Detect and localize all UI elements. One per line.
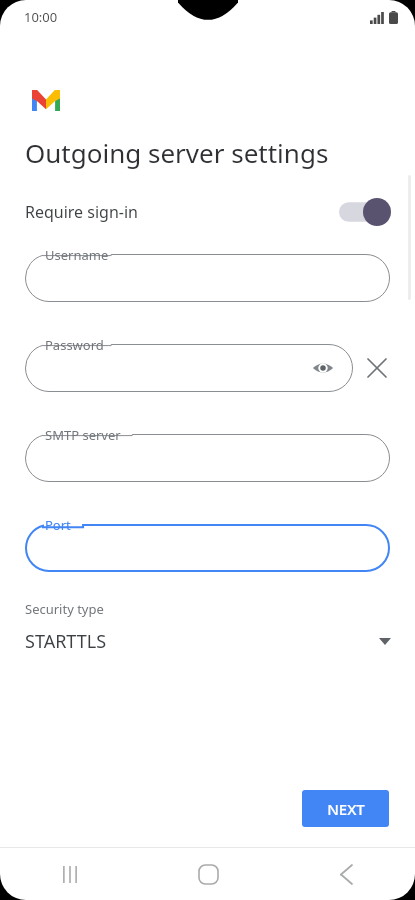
button[interactable]: NEXT <box>302 790 389 827</box>
button[interactable]: Require sign-in toggle <box>339 198 391 226</box>
staticText: STARTTLS <box>25 629 107 654</box>
staticText: SMTP server <box>45 426 121 444</box>
button[interactable]: Show password <box>307 352 339 384</box>
button[interactable]: Username <box>25 254 390 302</box>
staticText: 10:00 <box>24 8 58 26</box>
button[interactable]: Port <box>25 524 390 572</box>
button[interactable]: Require sign-in <box>0 192 415 232</box>
staticText: Outgoing server settings <box>25 135 329 170</box>
button[interactable]: Back <box>277 848 415 900</box>
staticText: Username <box>45 246 109 264</box>
button[interactable]: Password <box>25 344 353 392</box>
staticText: NEXT <box>327 799 365 819</box>
button[interactable]: Security type <box>0 600 415 654</box>
button[interactable]: Clear password <box>359 350 395 386</box>
staticText: Password <box>45 336 104 354</box>
button[interactable]: Recents <box>0 848 139 900</box>
button[interactable]: SMTP server <box>25 434 390 482</box>
button[interactable]: Home <box>139 848 277 900</box>
staticText: Port <box>45 516 71 534</box>
staticText: Security type <box>25 600 104 618</box>
staticText: Require sign-in <box>25 201 138 223</box>
